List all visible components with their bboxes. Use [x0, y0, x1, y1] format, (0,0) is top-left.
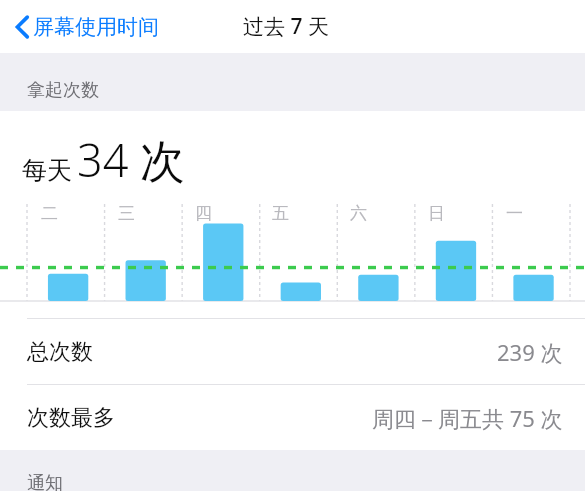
staticText: 过去 7 天: [243, 12, 329, 41]
staticText: 屏幕使用时间: [33, 14, 159, 40]
staticText: 一: [506, 203, 523, 224]
staticText: 34 次: [77, 129, 186, 190]
staticText: 239 次: [497, 337, 563, 367]
staticText: 拿起次数: [27, 79, 99, 102]
staticText: 二: [41, 203, 58, 224]
staticText: 三: [118, 203, 135, 224]
staticText: 周四－周五共 75 次: [372, 403, 563, 433]
button[interactable]: 次数最多: [0, 385, 585, 450]
button[interactable]: 总次数: [0, 319, 585, 384]
button[interactable]: 返回: [12, 10, 162, 44]
staticText: 六: [350, 203, 367, 224]
staticText: 日: [428, 203, 445, 224]
staticText: 四: [195, 203, 212, 224]
staticText: 五: [272, 203, 289, 224]
staticText: 总次数: [27, 338, 93, 366]
staticText: 通知: [27, 472, 63, 491]
staticText: 每天: [22, 155, 72, 186]
other: 返回: [15, 14, 30, 40]
staticText: 次数最多: [27, 404, 115, 432]
